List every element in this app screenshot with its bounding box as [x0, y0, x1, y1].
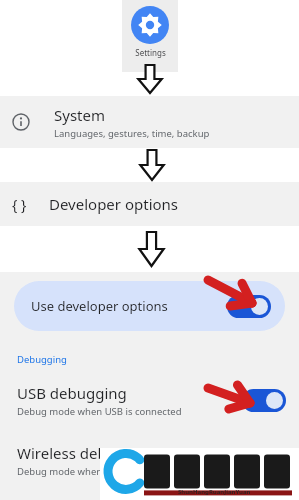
staticText: { }	[12, 195, 27, 214]
staticText: ShunHangRuanJianYuan	[178, 488, 251, 496]
other: Settings	[131, 6, 169, 44]
staticText: Use developer options	[31, 297, 168, 315]
staticText: Developer options	[49, 194, 179, 214]
button[interactable]: Toggle	[242, 389, 286, 412]
button[interactable]: Settings	[122, 0, 178, 72]
staticText: Languages, gestures, time, backup	[54, 127, 210, 140]
staticText: System	[54, 105, 105, 125]
staticText: Debug mode wher	[17, 465, 101, 478]
button[interactable]: Use developer options	[14, 281, 285, 331]
staticText: USB debugging	[17, 383, 127, 403]
staticText: Wireless deb	[17, 443, 107, 463]
button[interactable]: Toggle	[227, 295, 271, 318]
button[interactable]: USB debugging	[0, 379, 299, 421]
button[interactable]: System	[0, 96, 299, 148]
button[interactable]: { }	[0, 182, 299, 226]
staticText: Debug mode when USB is connected	[17, 405, 182, 418]
staticText: Settings	[135, 47, 166, 58]
staticText: Debugging	[17, 353, 67, 366]
